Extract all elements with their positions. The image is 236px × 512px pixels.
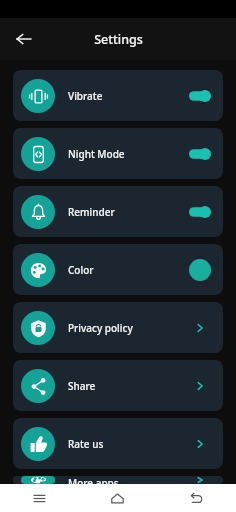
- button[interactable]: Night Mode: [13, 128, 223, 179]
- staticText: Color: [68, 263, 185, 277]
- button[interactable]: Vibrate: [13, 70, 223, 121]
- button[interactable]: Pick color: [189, 259, 211, 281]
- staticText: More apps: [68, 476, 185, 484]
- staticText: Night Mode: [68, 147, 185, 161]
- button[interactable]: Back: [157, 484, 236, 512]
- button[interactable]: Privacy policy: [13, 302, 223, 353]
- button[interactable]: Toggle: [189, 206, 211, 218]
- button[interactable]: Reminder: [13, 186, 223, 237]
- button[interactable]: Color: [13, 244, 223, 295]
- button[interactable]: Toggle: [189, 148, 211, 160]
- staticText: Reminder: [68, 205, 185, 219]
- staticText: Vibrate: [68, 89, 185, 103]
- button[interactable]: Back: [12, 27, 36, 51]
- staticText: Share: [68, 379, 185, 393]
- button[interactable]: Recents: [0, 484, 78, 512]
- staticText: Settings: [94, 31, 143, 48]
- button[interactable]: Home: [78, 484, 157, 512]
- button[interactable]: Toggle: [189, 90, 211, 102]
- button[interactable]: Rate us: [13, 418, 223, 469]
- button[interactable]: Share: [13, 360, 223, 411]
- button[interactable]: More apps: [13, 476, 223, 484]
- staticText: Rate us: [68, 437, 185, 451]
- staticText: Privacy policy: [68, 321, 185, 335]
